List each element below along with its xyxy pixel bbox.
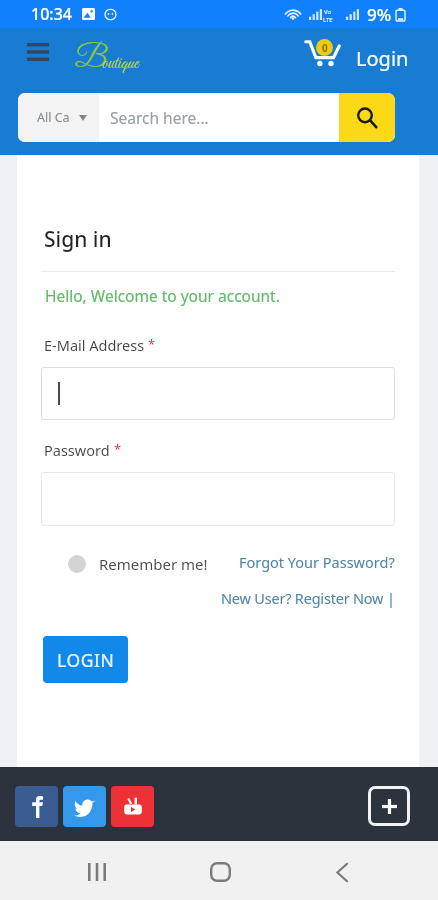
staticText: Remember me! [99,554,208,574]
button[interactable]: All Ca [18,93,99,142]
staticText: New User? Register Now | [221,588,395,608]
staticText: LOGIN [57,648,115,672]
button[interactable]: Recents [74,849,120,895]
button[interactable] [41,472,395,526]
button[interactable]: Menu [18,32,58,72]
staticText: B [75,40,107,78]
staticText: Forgot Your Password? [239,552,395,572]
button[interactable] [41,367,395,420]
button[interactable]: Remember me! [41,552,208,574]
staticText: E-Mail Address [44,335,148,355]
staticText: Sign in [44,225,112,254]
button[interactable]: Cart [302,36,341,68]
button[interactable]: Facebook [15,786,58,827]
button[interactable]: Twitter [63,786,106,827]
staticText: Search here... [110,107,209,128]
staticText: outique [102,53,139,76]
button[interactable]: Search [339,93,395,142]
button[interactable]: New User? Register Now | [221,588,395,608]
staticText: 9% [367,3,392,26]
staticText: 0 [322,41,328,55]
staticText: Hello, Welcome to your account. [45,285,280,306]
staticText: Password [44,440,114,460]
button[interactable]: Forgot Your Password? [239,552,395,572]
staticText: * [114,440,122,458]
staticText: * [148,335,156,353]
button[interactable]: Add [368,786,410,826]
staticText: Vo [324,8,332,16]
button[interactable]: Back [319,849,365,895]
staticText: All Ca [37,109,70,126]
staticText: Login [356,45,409,72]
staticText: 10:34 [31,3,72,25]
button[interactable]: Home [197,849,243,895]
button[interactable]: YouTube [111,786,154,827]
button[interactable]: LOGIN [43,636,128,683]
staticText: LTE [323,16,333,22]
button[interactable]: Login [350,41,415,76]
